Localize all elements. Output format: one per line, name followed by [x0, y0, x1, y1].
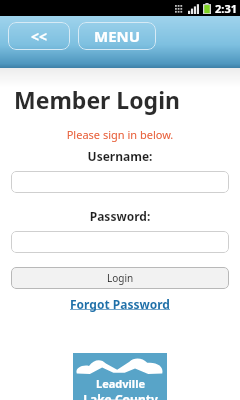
button[interactable]: MENU — [78, 22, 156, 50]
staticText: 2:31 — [215, 1, 237, 16]
button[interactable]: Login — [11, 267, 229, 289]
staticText: Login — [107, 271, 134, 285]
staticText: Lake County — [83, 391, 158, 400]
staticText: Please sign in below. — [0, 127, 240, 142]
button[interactable]: Text input — [11, 231, 229, 253]
staticText: Leadville — [96, 376, 145, 391]
staticText: MENU — [94, 26, 141, 46]
button[interactable]: << — [8, 22, 70, 50]
staticText: Password: — [0, 208, 240, 224]
button[interactable]: Leadville Lake County logo — [73, 353, 167, 400]
staticText: Member Login — [14, 84, 180, 115]
button[interactable]: Forgot Password — [0, 296, 240, 312]
button[interactable]: Text input — [11, 171, 229, 193]
staticText: << — [31, 27, 48, 46]
staticText: Forgot Password — [70, 296, 170, 312]
staticText: Username: — [0, 148, 240, 164]
